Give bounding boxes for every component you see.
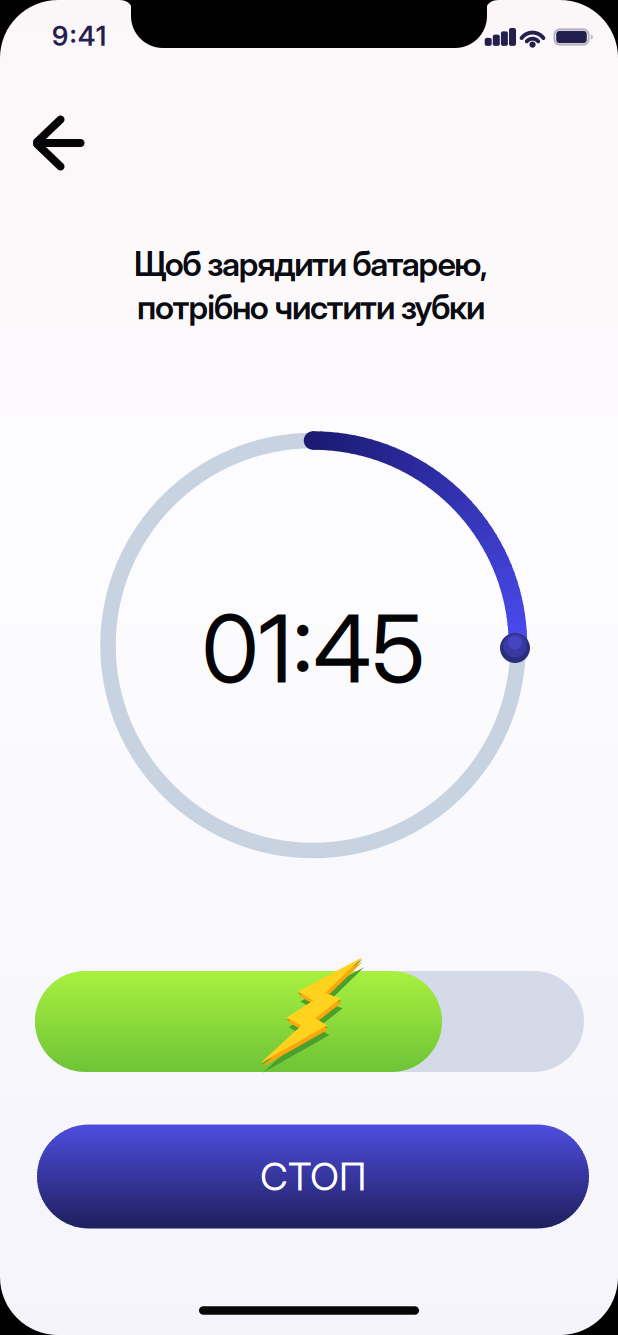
staticText: потрібно чистити зубки	[137, 287, 485, 327]
staticText: 9:41	[52, 20, 106, 52]
button[interactable]	[18, 102, 98, 182]
button[interactable]: СТОП	[37, 1124, 589, 1228]
staticText: Щоб зарядити батарею,	[134, 244, 488, 283]
staticText: СТОП	[260, 1154, 366, 1199]
staticText: 01:45	[201, 593, 425, 703]
